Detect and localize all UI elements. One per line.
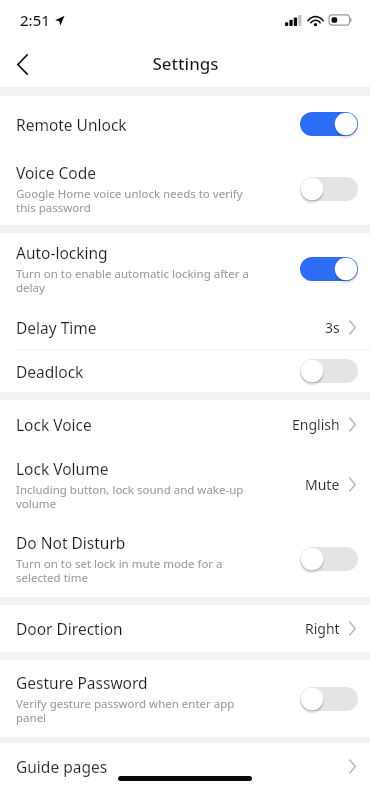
staticText: Remote Unlock bbox=[16, 114, 127, 135]
staticText: Verify gesture password when enter app p… bbox=[16, 696, 235, 726]
staticText: English bbox=[292, 415, 340, 434]
staticText: Guide pages bbox=[16, 756, 108, 777]
staticText: Do Not Disturb bbox=[16, 532, 126, 553]
button[interactable]: Back bbox=[0, 42, 44, 86]
staticText: Including button, lock sound and wake-up… bbox=[16, 482, 244, 512]
button[interactable]: Remote Unlock bbox=[0, 96, 370, 152]
staticText: Turn on to set lock in mute mode for a s… bbox=[16, 556, 223, 586]
button[interactable]: Voice Code bbox=[0, 152, 370, 225]
staticText: 2:51 bbox=[20, 10, 50, 30]
button[interactable]: Auto-locking, on bbox=[300, 254, 358, 284]
button[interactable]: Deadlock, off bbox=[300, 356, 358, 386]
button[interactable]: Remote Unlock, on bbox=[300, 109, 358, 139]
staticText: Gesture Password bbox=[16, 672, 148, 693]
button[interactable]: Auto-locking bbox=[0, 233, 370, 305]
staticText: Lock Volume bbox=[16, 458, 109, 479]
button[interactable]: Deadlock bbox=[0, 350, 370, 392]
button[interactable]: Gesture Password bbox=[0, 660, 370, 737]
staticText: Right bbox=[305, 619, 340, 638]
button[interactable]: Lock Volume bbox=[0, 448, 370, 521]
staticText: Delay Time bbox=[16, 317, 97, 338]
button[interactable]: Do Not Disturb bbox=[0, 521, 370, 597]
button[interactable]: Guide pages bbox=[0, 743, 370, 790]
button[interactable]: Voice Code, off bbox=[300, 174, 358, 204]
button[interactable]: Lock Voice bbox=[0, 400, 370, 448]
staticText: Voice Code bbox=[16, 162, 97, 183]
staticText: Auto-locking bbox=[16, 242, 108, 263]
button[interactable]: Door Direction bbox=[0, 605, 370, 652]
button[interactable]: Gesture Password, off bbox=[300, 684, 358, 714]
staticText: Lock Voice bbox=[16, 414, 92, 435]
staticText: Settings bbox=[152, 52, 219, 75]
button[interactable]: Do Not Disturb, off bbox=[300, 544, 358, 574]
staticText: Google Home voice unlock needs to verify… bbox=[16, 186, 243, 216]
staticText: Turn on to enable automatic locking afte… bbox=[16, 266, 249, 296]
staticText: 3s bbox=[325, 318, 340, 337]
staticText: Deadlock bbox=[16, 361, 84, 382]
staticText: Door Direction bbox=[16, 618, 123, 639]
staticText: Mute bbox=[305, 475, 340, 494]
button[interactable]: Delay Time bbox=[0, 305, 370, 349]
